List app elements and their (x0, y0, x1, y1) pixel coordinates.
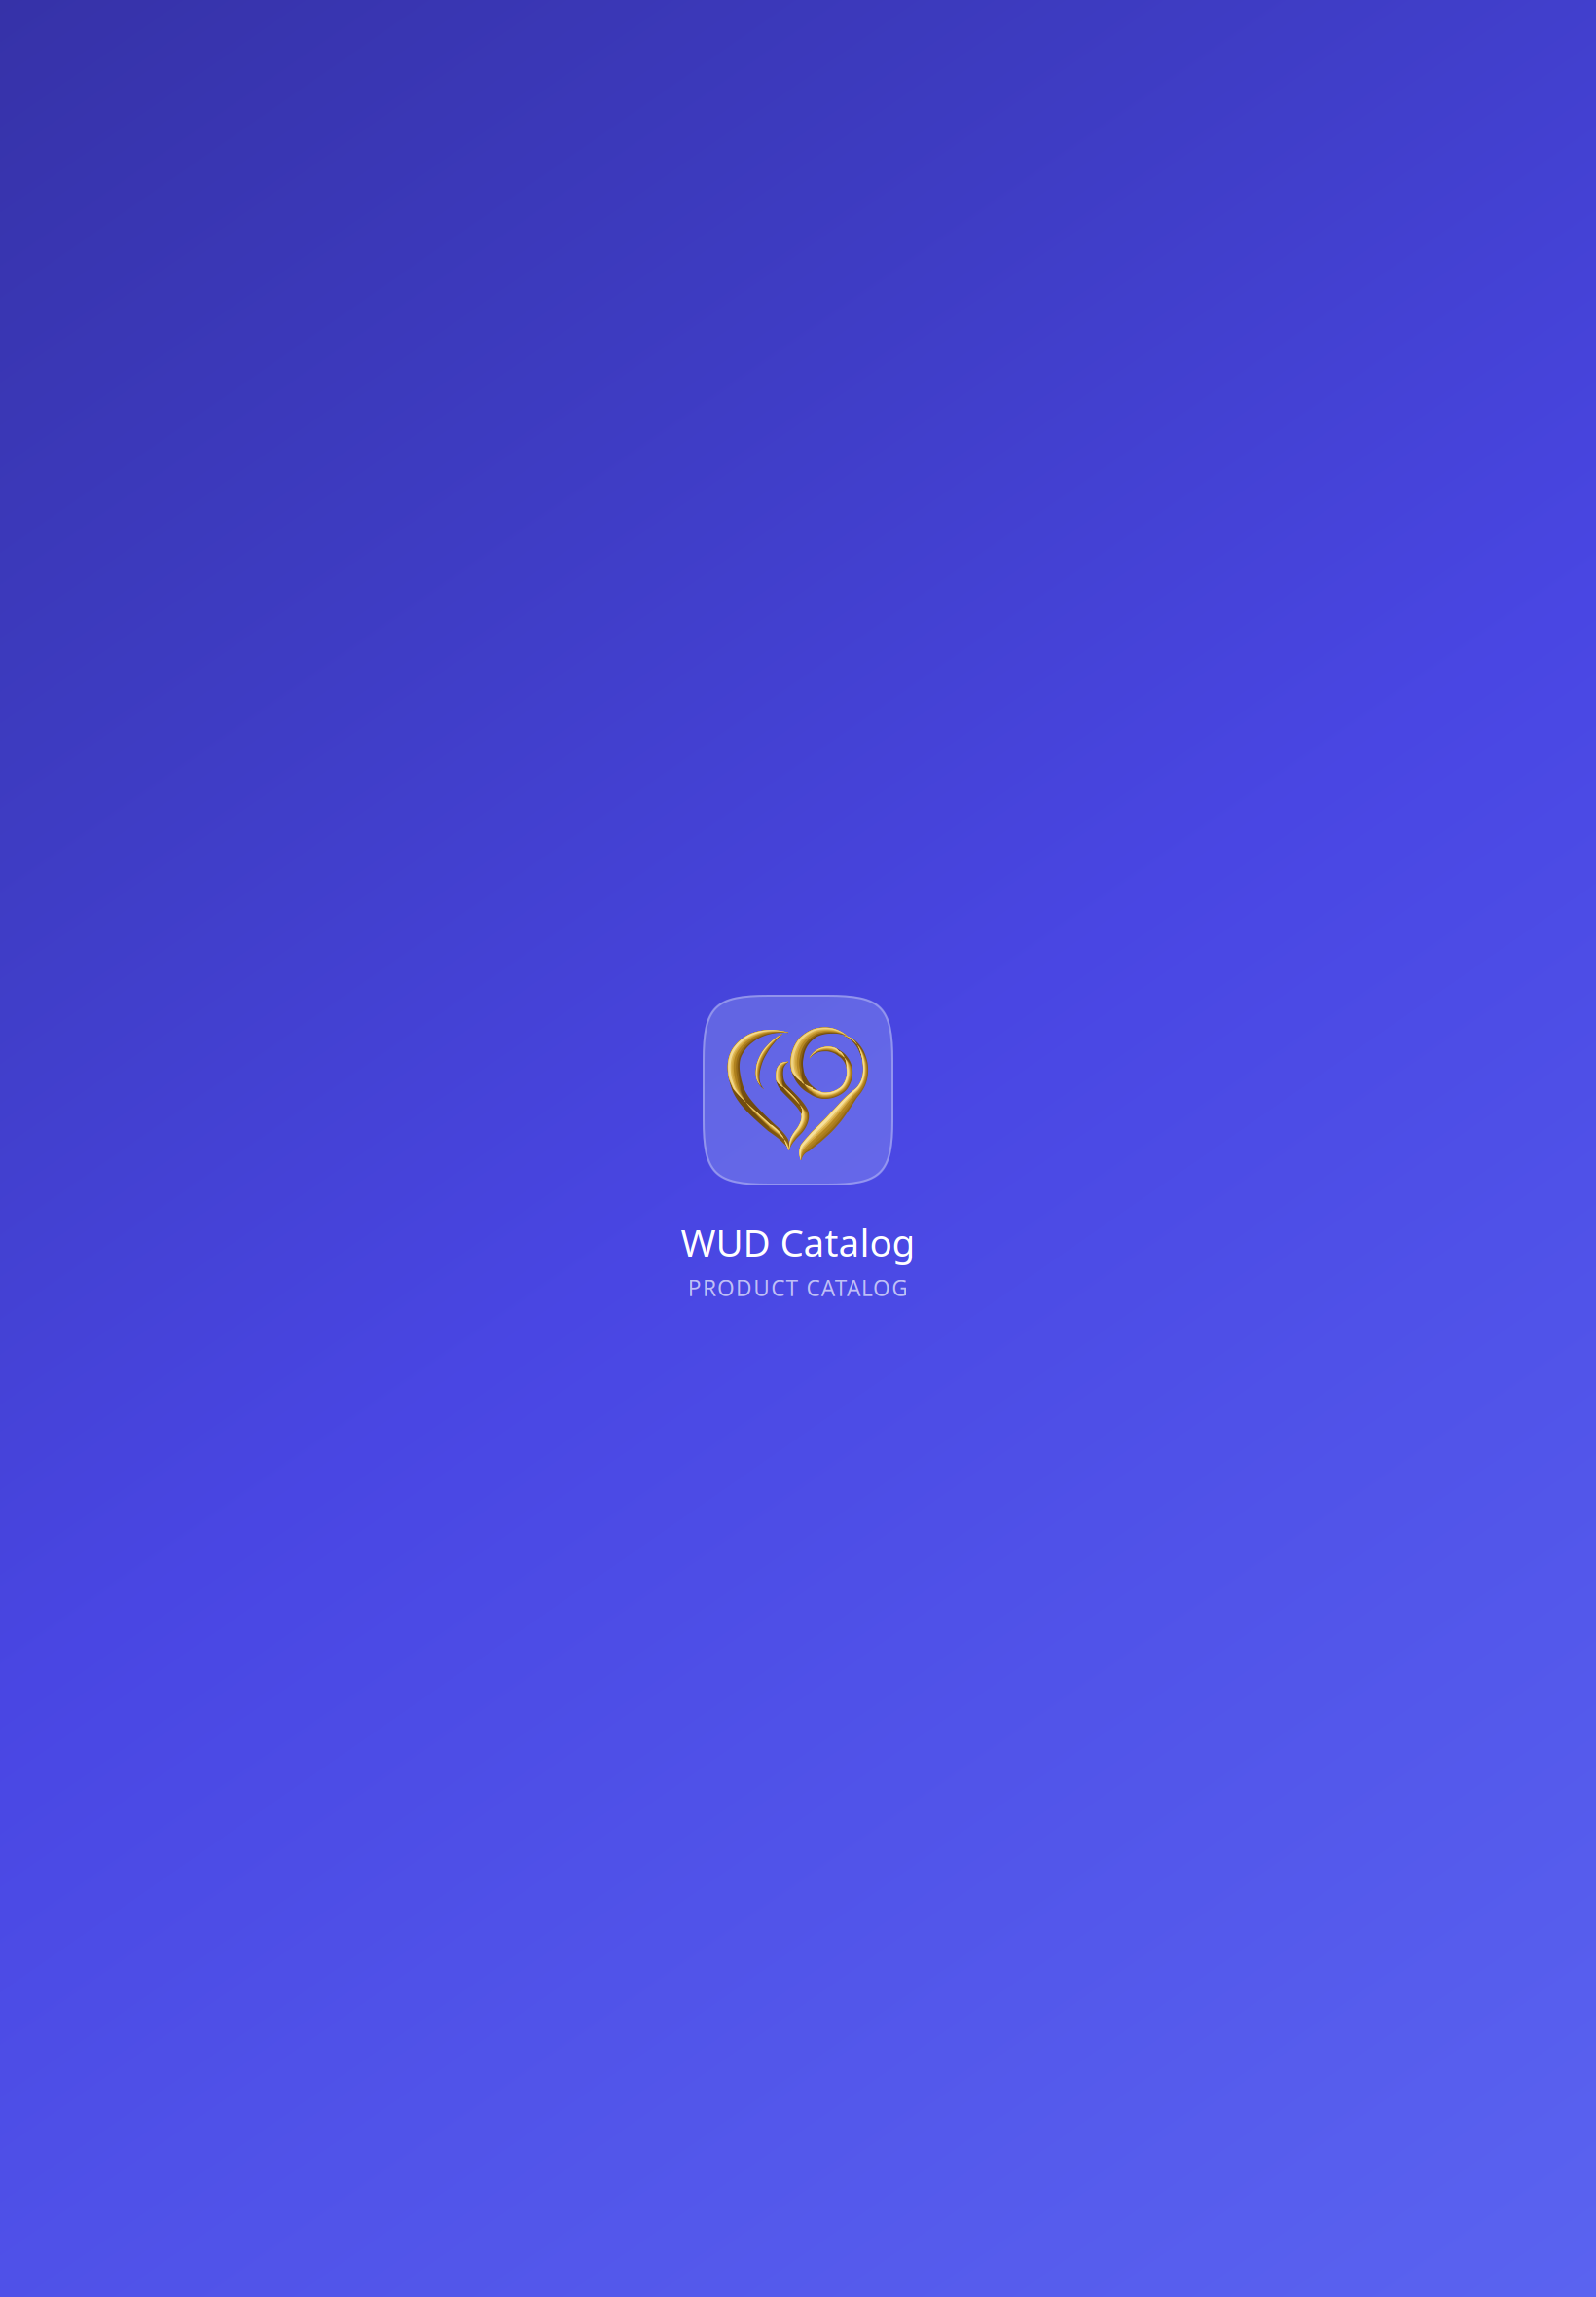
staticText: PRODUCT CATALOG (688, 1273, 908, 1302)
staticText: WUD Catalog (681, 1217, 915, 1267)
